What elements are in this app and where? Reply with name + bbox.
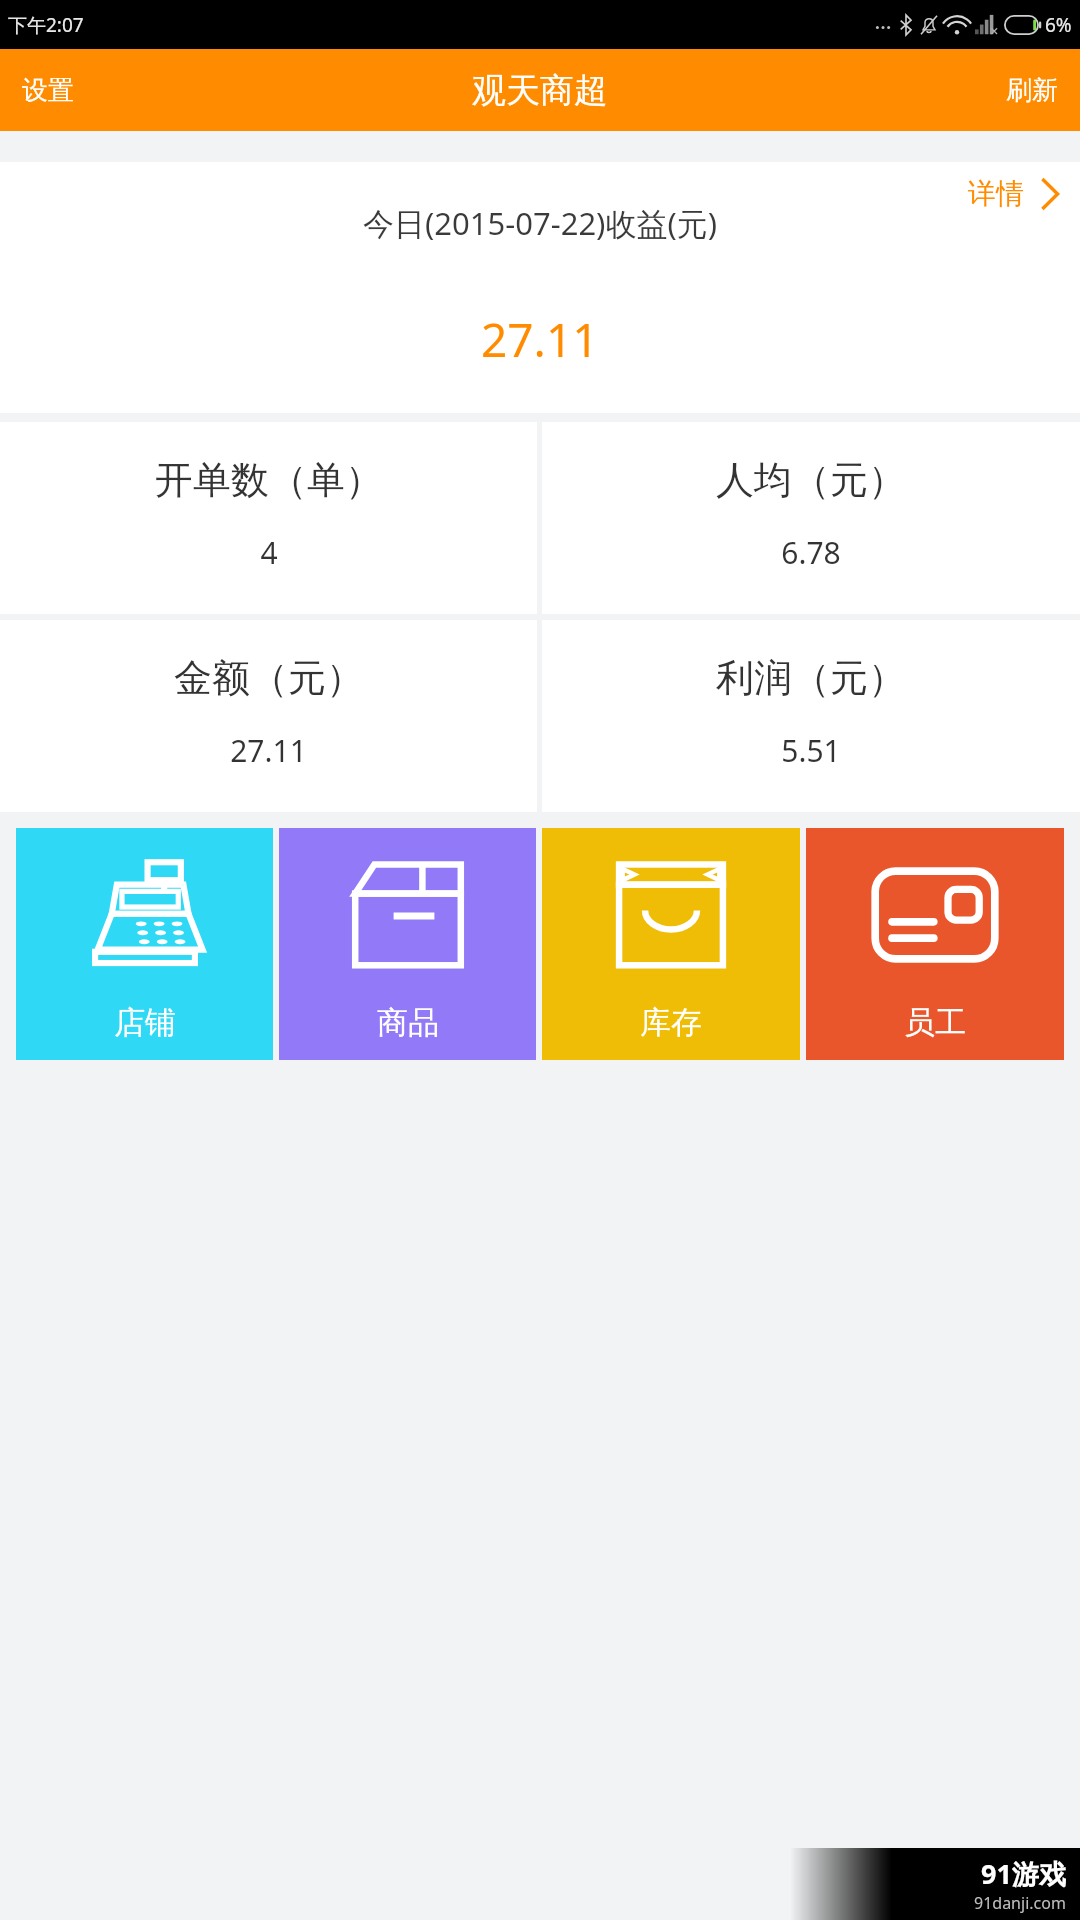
button[interactable]: 店铺 <box>16 828 273 1060</box>
staticText: 库存 <box>640 1003 702 1042</box>
other: 员工 <box>870 865 1000 967</box>
staticText: 91游戏 <box>981 1855 1066 1892</box>
staticText: 利润（元） <box>716 654 906 702</box>
staticText: 人均（元） <box>716 456 906 504</box>
staticText: 开单数（单） <box>155 456 383 504</box>
other: 店铺 <box>81 860 209 972</box>
other: 库存 <box>612 860 730 972</box>
staticText: 5.51 <box>781 730 841 771</box>
staticText: 27.11 <box>481 308 599 371</box>
other: 商品 <box>348 860 468 972</box>
button[interactable]: 利润（元） <box>542 620 1080 812</box>
staticText: 27.11 <box>230 730 307 771</box>
staticText: 商品 <box>377 1003 439 1042</box>
staticText: 今日(2015-07-22)收益(元) <box>363 202 718 244</box>
button[interactable]: 设置 <box>0 62 96 119</box>
staticText: 91danji.com <box>974 1892 1066 1914</box>
staticText: 金额（元） <box>174 654 364 702</box>
staticText: 6.78 <box>781 532 841 573</box>
staticText: 设置 <box>22 74 74 107</box>
button[interactable]: 库存 <box>542 828 800 1060</box>
staticText: 下午2:07 <box>8 12 84 38</box>
staticText: 刷新 <box>1006 74 1058 107</box>
button[interactable]: 开单数（单） <box>0 422 537 614</box>
button[interactable]: 详情 <box>948 162 1080 225</box>
staticText: 员工 <box>904 1003 966 1042</box>
staticText: 详情 <box>968 176 1024 211</box>
staticText: 观天商超 <box>472 69 608 112</box>
button[interactable]: 商品 <box>279 828 536 1060</box>
staticText: 4 <box>260 532 278 573</box>
button[interactable]: 员工 <box>806 828 1064 1060</box>
button[interactable]: 刷新 <box>984 62 1080 119</box>
button[interactable]: 金额（元） <box>0 620 537 812</box>
staticText: 6% <box>1045 12 1072 38</box>
button[interactable]: 人均（元） <box>542 422 1080 614</box>
staticText: 店铺 <box>114 1003 176 1042</box>
